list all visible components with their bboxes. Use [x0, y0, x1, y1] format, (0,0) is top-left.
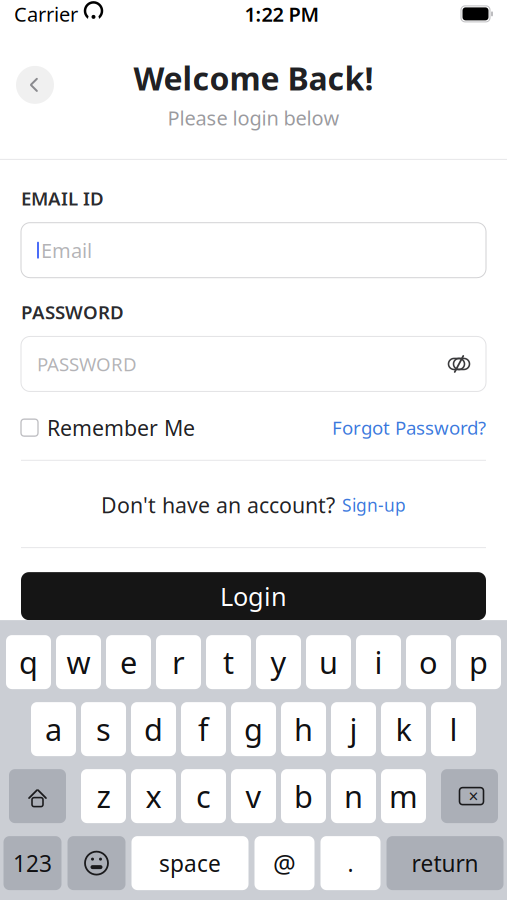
button[interactable]: Delete — [441, 769, 498, 823]
button[interactable]: v — [231, 769, 276, 823]
staticText: x — [145, 776, 161, 816]
button[interactable]: Back — [16, 66, 54, 104]
staticText: l — [449, 709, 457, 749]
button[interactable]: i — [356, 635, 401, 689]
button[interactable]: y — [256, 635, 301, 689]
staticText: Login — [220, 579, 287, 613]
staticText: c — [196, 776, 211, 816]
button[interactable]: Emoji — [67, 836, 125, 890]
button[interactable]: d — [131, 702, 176, 756]
button[interactable]: Shift — [9, 769, 66, 823]
staticText: m — [389, 776, 418, 816]
staticText: s — [96, 709, 111, 749]
staticText: g — [244, 709, 263, 749]
staticText: u — [319, 642, 338, 682]
button[interactable]: x — [131, 769, 176, 823]
staticText: Welcome Back! — [133, 57, 373, 99]
button[interactable]: return — [386, 836, 503, 890]
button[interactable]: n — [331, 769, 376, 823]
staticText: e — [120, 642, 137, 682]
staticText: q — [19, 642, 38, 682]
staticText: @ — [273, 846, 296, 880]
button[interactable]: c — [181, 769, 226, 823]
staticText: PASSWORD — [37, 352, 137, 376]
button[interactable]: Don't have an account? — [101, 491, 406, 519]
staticText: Forgot Password? — [332, 415, 486, 440]
button[interactable]: Forgot Password? — [332, 415, 486, 440]
button[interactable]: h — [281, 702, 326, 756]
button[interactable]: a — [31, 702, 76, 756]
staticText: PASSWORD — [21, 300, 124, 324]
staticText: k — [395, 709, 411, 749]
staticText: 123 — [13, 848, 52, 878]
staticText: EMAIL ID — [21, 186, 104, 211]
button[interactable]: j — [331, 702, 376, 756]
button[interactable]: space — [131, 836, 248, 890]
staticText: Remember Me — [47, 413, 195, 442]
staticText: h — [294, 709, 313, 749]
staticText: . — [347, 848, 353, 878]
staticText: Sign-up — [342, 493, 406, 516]
button[interactable]: Remember Me — [21, 413, 195, 442]
button[interactable]: 123 — [3, 836, 61, 890]
button[interactable]: l — [431, 702, 476, 756]
staticText: j — [349, 709, 357, 749]
staticText: × — [468, 785, 478, 808]
staticText: r — [172, 642, 185, 682]
button[interactable]: q — [6, 635, 51, 689]
staticText: 1:22 PM — [244, 1, 319, 27]
staticText: Don't have an account? — [101, 491, 335, 519]
staticText: space — [159, 848, 221, 878]
staticText: v — [245, 776, 261, 816]
button[interactable]: Email — [21, 223, 486, 278]
button[interactable]: @ — [254, 836, 314, 890]
button[interactable]: Login — [21, 572, 486, 620]
button[interactable]: s — [81, 702, 126, 756]
button[interactable]: PASSWORD — [21, 336, 486, 391]
button[interactable]: m — [381, 769, 426, 823]
button[interactable]: w — [56, 635, 101, 689]
staticText: Email — [41, 237, 92, 263]
staticText: d — [144, 709, 163, 749]
button[interactable]: . — [320, 836, 380, 890]
button[interactable]: e — [106, 635, 151, 689]
staticText: i — [374, 642, 382, 682]
staticText: n — [344, 776, 363, 816]
staticText: t — [223, 642, 234, 682]
button[interactable]: t — [206, 635, 251, 689]
staticText: a — [45, 709, 62, 749]
button[interactable]: k — [381, 702, 426, 756]
button[interactable]: p — [456, 635, 501, 689]
staticText: w — [66, 642, 90, 682]
button[interactable]: z — [81, 769, 126, 823]
button[interactable]: b — [281, 769, 326, 823]
staticText: Carrier — [14, 1, 78, 27]
button[interactable]: f — [181, 702, 226, 756]
staticText: b — [294, 776, 313, 816]
button[interactable]: o — [406, 635, 451, 689]
staticText: f — [198, 709, 209, 749]
staticText: Please login below — [167, 104, 339, 131]
button[interactable]: r — [156, 635, 201, 689]
staticText: p — [469, 642, 488, 682]
staticText: y — [270, 642, 286, 682]
staticText: return — [411, 848, 478, 878]
button[interactable]: g — [231, 702, 276, 756]
staticText: z — [96, 776, 110, 816]
button[interactable]: u — [306, 635, 351, 689]
staticText: o — [419, 642, 438, 682]
